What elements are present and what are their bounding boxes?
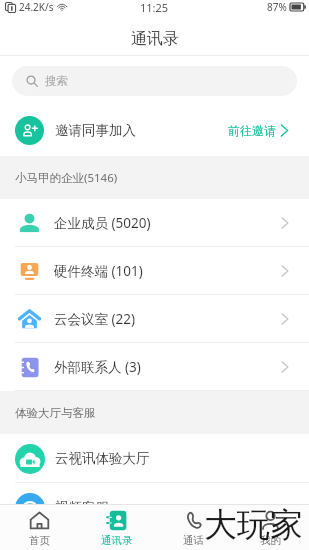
staticText: 小马甲的企业(5146) — [15, 170, 118, 186]
staticText: 大玩家 — [204, 504, 303, 546]
button[interactable]: 视频客服 — [0, 483, 309, 532]
button[interactable]: 邀请同事加入 — [0, 105, 309, 156]
staticText: 通讯录 — [131, 29, 179, 49]
button[interactable]: 通话 — [155, 505, 232, 550]
button[interactable]: 云会议室 (22) — [0, 295, 309, 343]
staticText: 邀请同事加入 — [55, 122, 136, 139]
staticText: 首页 — [29, 534, 50, 547]
button[interactable]: 外部联系人 (3) — [0, 343, 309, 391]
staticText: 11:25 — [140, 0, 169, 14]
staticText: 体验大厅与客服 — [15, 406, 96, 420]
button[interactable]: 搜索 — [12, 66, 297, 96]
staticText: 我的 — [260, 534, 281, 547]
staticText: 通话 — [183, 534, 204, 547]
button[interactable]: 云视讯体验大厅 — [0, 434, 309, 483]
button[interactable]: 首页 — [0, 505, 78, 550]
button[interactable]: 通讯录 — [78, 505, 155, 550]
staticText: 企业成员 (5020) — [54, 214, 151, 232]
staticText: 硬件终端 (101) — [54, 262, 143, 280]
staticText: 通讯录 — [101, 534, 133, 547]
staticText: 云会议室 (22) — [54, 310, 136, 328]
staticText: 视频客服 — [55, 499, 109, 516]
button[interactable]: 硬件终端 (101) — [0, 247, 309, 295]
button[interactable]: 企业成员 (5020) — [0, 199, 309, 247]
button[interactable]: 我的 — [232, 505, 309, 550]
staticText: 24.2K/s — [19, 0, 54, 14]
staticText: 外部联系人 (3) — [54, 358, 141, 376]
staticText: 搜索 — [45, 74, 68, 88]
staticText: 云视讯体验大厅 — [55, 450, 150, 467]
staticText: 前往邀请 — [228, 123, 276, 138]
staticText: 87% — [267, 0, 287, 14]
